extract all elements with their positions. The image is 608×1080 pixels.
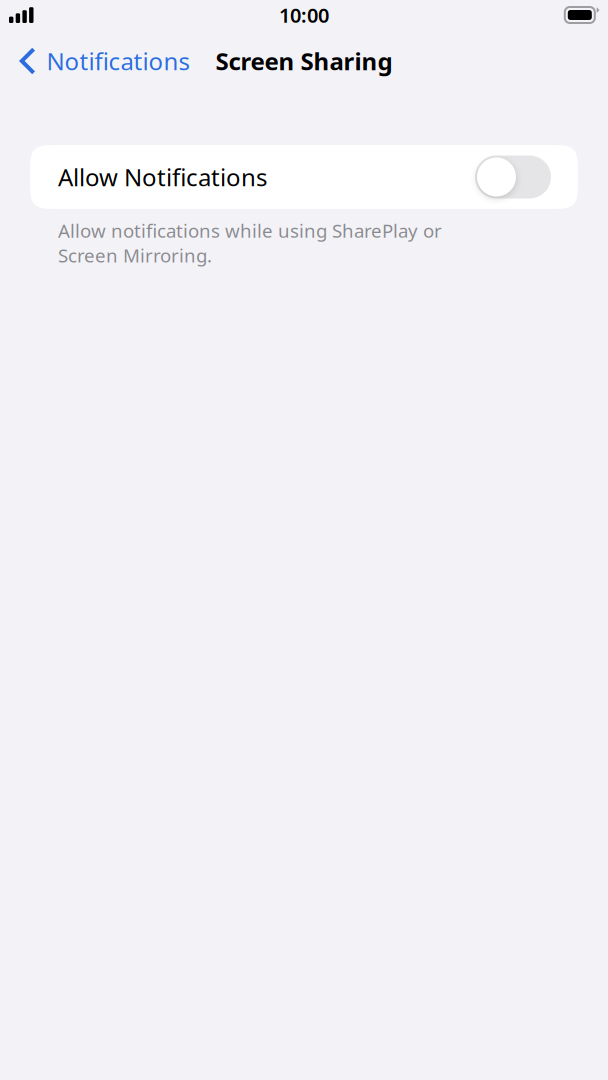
staticText: Allow notifications while using SharePla… [58,218,442,268]
button[interactable]: Allow Notifications [0,145,608,209]
staticText: Screen Sharing [215,45,392,77]
staticText: Notifications [46,45,189,77]
button[interactable]: Notifications [0,39,199,83]
staticText: Allow Notifications [58,161,267,193]
staticText: 10:00 [279,2,329,28]
